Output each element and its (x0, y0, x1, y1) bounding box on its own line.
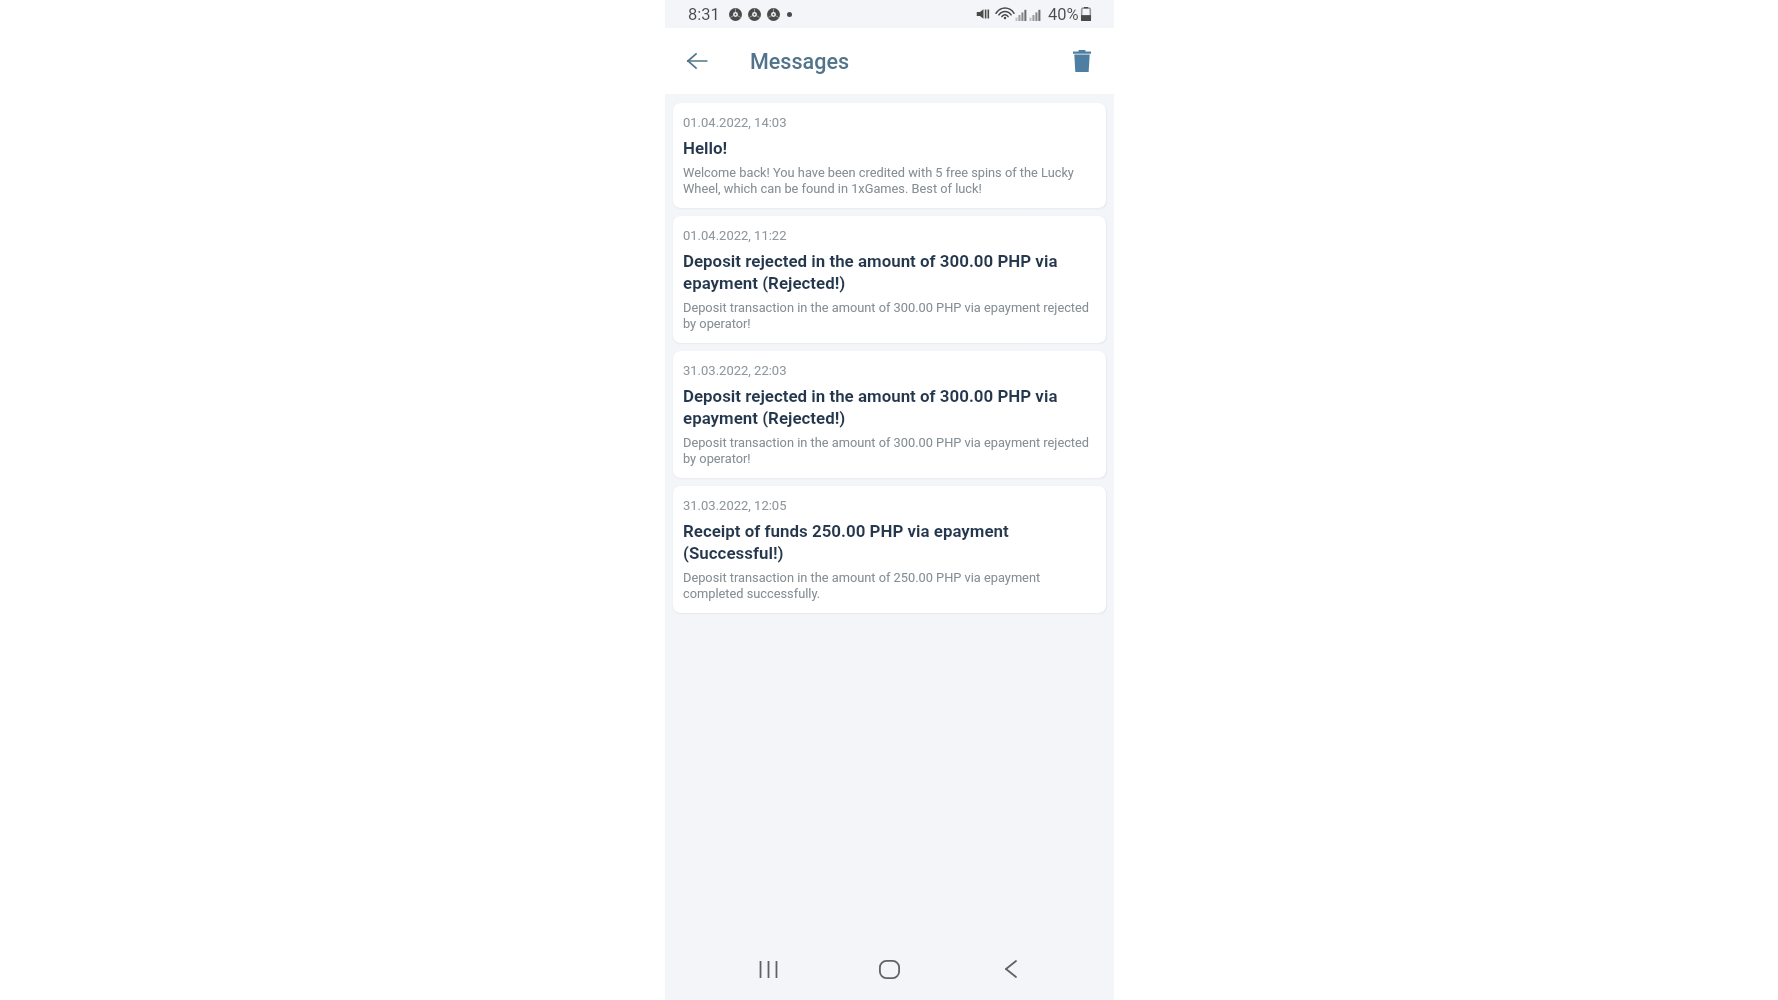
staticText: 31.03.2022, 12:05 (683, 498, 787, 513)
button[interactable]: 31.03.2022, 12:05 (673, 486, 1106, 613)
button[interactable]: Recents (708, 944, 829, 994)
staticText: 8:31 (688, 5, 720, 24)
staticText: Deposit rejected in the amount of 300.00… (683, 386, 1096, 428)
button[interactable]: Delete (1060, 39, 1104, 83)
staticText: 01.04.2022, 14:03 (683, 115, 787, 130)
button[interactable]: Back (950, 944, 1071, 994)
button[interactable]: 31.03.2022, 22:03 (673, 351, 1106, 478)
button[interactable]: 01.04.2022, 11:22 (673, 216, 1106, 343)
staticText: 40% (1048, 5, 1079, 24)
staticText: Welcome back! You have been credited wit… (683, 165, 1096, 196)
staticText: Deposit transaction in the amount of 250… (683, 570, 1096, 601)
staticText: Hello! (683, 138, 728, 158)
staticText: Deposit transaction in the amount of 300… (683, 435, 1096, 466)
staticText: Receipt of funds 250.00 PHP via epayment… (683, 521, 1096, 563)
staticText: Deposit transaction in the amount of 300… (683, 300, 1096, 331)
staticText: 01.04.2022, 11:22 (683, 228, 787, 243)
staticText: Deposit rejected in the amount of 300.00… (683, 251, 1096, 293)
staticText: 31.03.2022, 22:03 (683, 363, 787, 378)
button[interactable]: 01.04.2022, 14:03 (673, 103, 1106, 208)
staticText: Messages (750, 49, 850, 74)
button[interactable]: Back (675, 39, 719, 83)
button[interactable]: Home (829, 944, 950, 994)
